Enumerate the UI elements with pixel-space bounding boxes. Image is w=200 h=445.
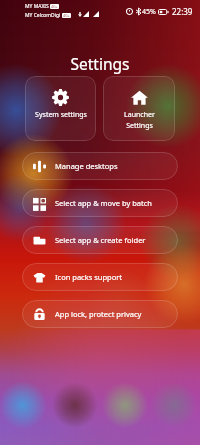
button[interactable]: System settings xyxy=(25,76,96,141)
staticText: Icon packs support xyxy=(55,272,123,282)
button[interactable]: Select app & create folder xyxy=(22,226,178,254)
staticText: Select app & move by batch xyxy=(55,198,152,208)
staticText: System settings xyxy=(35,110,87,120)
staticText: 4G+ xyxy=(63,13,70,18)
button[interactable]: App lock, protect privacy xyxy=(22,300,178,328)
staticText: Manage desktops xyxy=(55,161,118,171)
button[interactable]: Launcher Settings xyxy=(103,76,175,141)
staticText: Launcher Settings xyxy=(124,110,155,130)
staticText: 45% xyxy=(142,7,156,17)
staticText: MY CelcomDigi xyxy=(25,12,61,19)
staticText: MY MAXIS xyxy=(25,3,49,10)
button[interactable]: Select app & move by batch xyxy=(22,189,178,217)
staticText: Select app & create folder xyxy=(55,235,146,245)
staticText: 4G+ xyxy=(51,4,58,9)
staticText: 22:39 xyxy=(172,6,193,17)
button[interactable]: Icon packs support xyxy=(22,263,178,291)
staticText: App lock, protect privacy xyxy=(55,309,142,319)
staticText: Settings xyxy=(0,53,200,74)
button[interactable]: Manage desktops xyxy=(22,152,178,180)
